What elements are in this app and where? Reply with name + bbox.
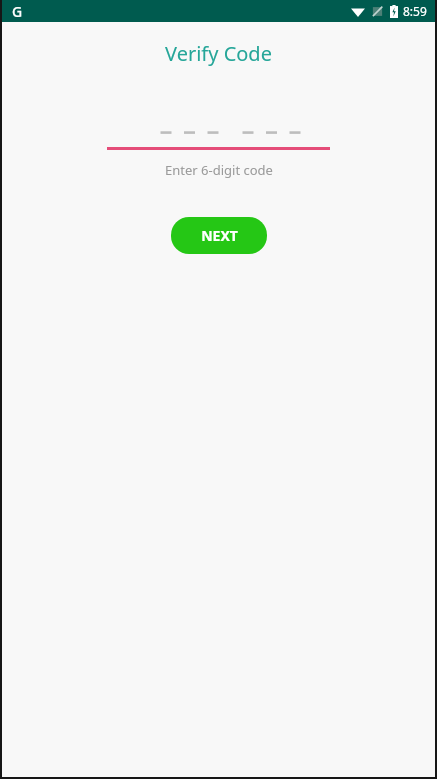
staticText: Verify Code — [165, 40, 272, 67]
button[interactable] — [107, 124, 330, 150]
staticText: NEXT — [201, 226, 238, 245]
staticText: 8:59 — [403, 3, 427, 19]
button[interactable]: Next — [171, 217, 267, 254]
staticText: G — [12, 2, 23, 21]
staticText: Enter 6-digit code — [165, 161, 273, 179]
